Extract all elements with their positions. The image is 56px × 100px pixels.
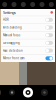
staticText: Face detection (3, 49, 23, 52)
staticText: Manual focus (3, 33, 20, 37)
button[interactable]: Camera control (47, 2, 56, 7)
button[interactable]: Camera control (9, 2, 19, 7)
button[interactable]: Camera control (19, 2, 28, 7)
staticText: Geotagging (3, 41, 20, 45)
button[interactable]: Camera control (28, 2, 37, 7)
button[interactable]: Photo library (0, 88, 1, 96)
staticText: HDR (3, 18, 9, 21)
button[interactable]: Geotagging (1, 39, 55, 46)
button[interactable]: Switch camera (41, 89, 48, 96)
staticText: Settings (3, 10, 16, 15)
button[interactable]: Mirror front cam (1, 54, 55, 62)
button[interactable]: Face detection (1, 46, 55, 54)
button[interactable]: Shutter (23, 87, 33, 97)
button[interactable]: Flash (9, 89, 15, 95)
button[interactable]: Camera control (0, 2, 9, 7)
button[interactable]: Camera control (37, 2, 47, 7)
staticText: Mirror front cam (3, 56, 24, 60)
button[interactable]: Anti-banding (1, 23, 55, 31)
button[interactable]: Manual focus (1, 31, 55, 39)
staticText: Anti-banding (3, 26, 22, 29)
button[interactable]: HDR (1, 16, 55, 23)
